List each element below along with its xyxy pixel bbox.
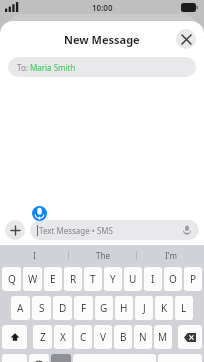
staticText: U bbox=[129, 272, 137, 286]
staticText: V bbox=[100, 330, 106, 344]
button[interactable]: I bbox=[0, 245, 68, 265]
button[interactable]: W bbox=[23, 267, 42, 291]
button[interactable]: Dictate bbox=[181, 224, 193, 236]
button[interactable]: Voice input active bbox=[32, 206, 47, 221]
button[interactable]: To: bbox=[8, 57, 196, 77]
staticText: New Message bbox=[64, 32, 140, 47]
button[interactable]: Z bbox=[33, 325, 52, 349]
staticText: C bbox=[80, 330, 87, 344]
staticText: P bbox=[190, 272, 197, 286]
staticText: M bbox=[158, 330, 168, 344]
button[interactable]: X bbox=[54, 325, 72, 349]
staticText: 10:00 bbox=[92, 2, 113, 13]
staticText: G bbox=[100, 301, 108, 315]
button[interactable]: H bbox=[115, 296, 133, 320]
button[interactable]: The bbox=[69, 245, 136, 265]
button[interactable]: Add attachment bbox=[5, 220, 25, 240]
button[interactable]: R bbox=[64, 267, 82, 291]
staticText: H bbox=[120, 301, 128, 315]
staticText: Text Message • SMS bbox=[39, 225, 113, 236]
button[interactable]: L bbox=[175, 296, 193, 320]
staticText: Q bbox=[8, 272, 16, 286]
button[interactable]: I'm bbox=[137, 245, 204, 265]
button[interactable]: G bbox=[95, 296, 113, 320]
staticText: T bbox=[90, 272, 96, 286]
button[interactable]: V bbox=[94, 325, 112, 349]
button[interactable]: 123 bbox=[2, 354, 27, 362]
button[interactable]: Dictation bbox=[51, 354, 71, 362]
button[interactable]: Text Message • SMS bbox=[30, 220, 199, 240]
staticText: I bbox=[151, 272, 155, 286]
button[interactable]: E bbox=[44, 267, 62, 291]
button[interactable]: K bbox=[155, 296, 173, 320]
button[interactable]: Backspace bbox=[178, 325, 202, 349]
staticText: J bbox=[143, 301, 146, 315]
staticText: I'm bbox=[165, 250, 177, 261]
staticText: Y bbox=[110, 272, 116, 286]
button[interactable]: I bbox=[144, 267, 162, 291]
button[interactable]: P bbox=[184, 267, 202, 291]
button[interactable]: F bbox=[74, 296, 93, 320]
button[interactable]: Close bbox=[176, 29, 196, 49]
button[interactable]: A bbox=[11, 296, 30, 320]
button[interactable]: D bbox=[53, 296, 72, 320]
staticText: N bbox=[139, 330, 147, 344]
staticText: I bbox=[33, 250, 36, 261]
staticText: W bbox=[28, 272, 38, 286]
button[interactable]: C bbox=[74, 325, 92, 349]
button[interactable]: Q bbox=[2, 267, 21, 291]
button[interactable]: B bbox=[114, 325, 132, 349]
button[interactable]: U bbox=[124, 267, 142, 291]
button[interactable]: J bbox=[135, 296, 153, 320]
button[interactable]: M bbox=[154, 325, 172, 349]
staticText: To: bbox=[17, 62, 30, 73]
button[interactable]: S bbox=[32, 296, 51, 320]
button[interactable]: Shift bbox=[2, 325, 27, 349]
staticText: D bbox=[59, 301, 67, 315]
staticText: E bbox=[50, 272, 56, 286]
button[interactable]: Return bbox=[158, 354, 202, 362]
button[interactable]: N bbox=[134, 325, 152, 349]
staticText: The bbox=[96, 250, 110, 261]
staticText: K bbox=[161, 301, 168, 315]
button[interactable]: Emoji bbox=[29, 354, 49, 362]
staticText: F bbox=[81, 301, 87, 315]
staticText: S bbox=[39, 301, 45, 315]
staticText: Maria Smith bbox=[30, 62, 76, 73]
button[interactable]: Y bbox=[104, 267, 122, 291]
button[interactable]: T bbox=[84, 267, 102, 291]
button[interactable]: O bbox=[164, 267, 182, 291]
staticText: Z bbox=[40, 330, 46, 344]
staticText: O bbox=[169, 272, 177, 286]
staticText: A bbox=[17, 301, 24, 315]
staticText: R bbox=[70, 272, 77, 286]
staticText: B bbox=[120, 330, 127, 344]
staticText: X bbox=[60, 330, 66, 344]
staticText: L bbox=[181, 301, 187, 315]
